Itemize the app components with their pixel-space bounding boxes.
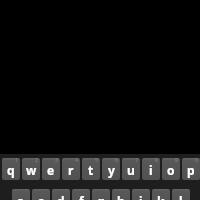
button[interactable]: f key [72,189,90,200]
button[interactable]: p key, 0 [182,158,200,180]
staticText: a [17,193,25,200]
button[interactable]: s key [32,189,50,200]
button[interactable]: k key [152,189,170,200]
staticText: g [97,193,105,200]
button[interactable]: l key [172,189,190,200]
button[interactable]: o key, 9 [162,158,180,180]
button[interactable]: i key, 8 [142,158,160,180]
staticText: e [47,162,55,178]
button[interactable]: g key [92,189,110,200]
button[interactable]: a key [12,189,30,200]
staticText: i [149,162,153,178]
staticText: 4 [75,158,78,164]
staticText: o [167,162,175,178]
button[interactable]: r key, 4 [62,158,80,180]
button[interactable]: y key, 6 [102,158,120,180]
button[interactable]: u key, 7 [122,158,140,180]
staticText: 5 [95,158,98,164]
staticText: q [7,162,15,178]
staticText: u [127,162,135,178]
button[interactable]: q key, 1 [2,158,20,180]
staticText: y [108,162,115,178]
button[interactable]: w key, 2 [22,158,40,180]
button[interactable]: d key [52,189,70,200]
staticText: h [117,193,125,200]
staticText: 3 [55,158,58,164]
staticText: d [57,193,65,200]
staticText: 7 [135,158,138,164]
staticText: 2 [35,158,38,164]
staticText: l [179,193,183,200]
button[interactable]: t key, 5 [82,158,100,180]
staticText: 1 [15,158,18,164]
staticText: r [68,162,74,178]
staticText: j [139,193,143,200]
button[interactable]: j key [132,189,150,200]
staticText: t [88,162,94,178]
staticText: 0 [195,158,198,164]
staticText: 9 [175,158,178,164]
button[interactable]: h key [112,189,130,200]
staticText: w [26,162,37,178]
staticText: f [79,193,84,200]
staticText: 6 [115,158,118,164]
staticText: s [38,193,45,200]
staticText: k [157,193,165,200]
staticText: 8 [155,158,158,164]
staticText: p [187,162,195,178]
button[interactable]: e key, 3 [42,158,60,180]
